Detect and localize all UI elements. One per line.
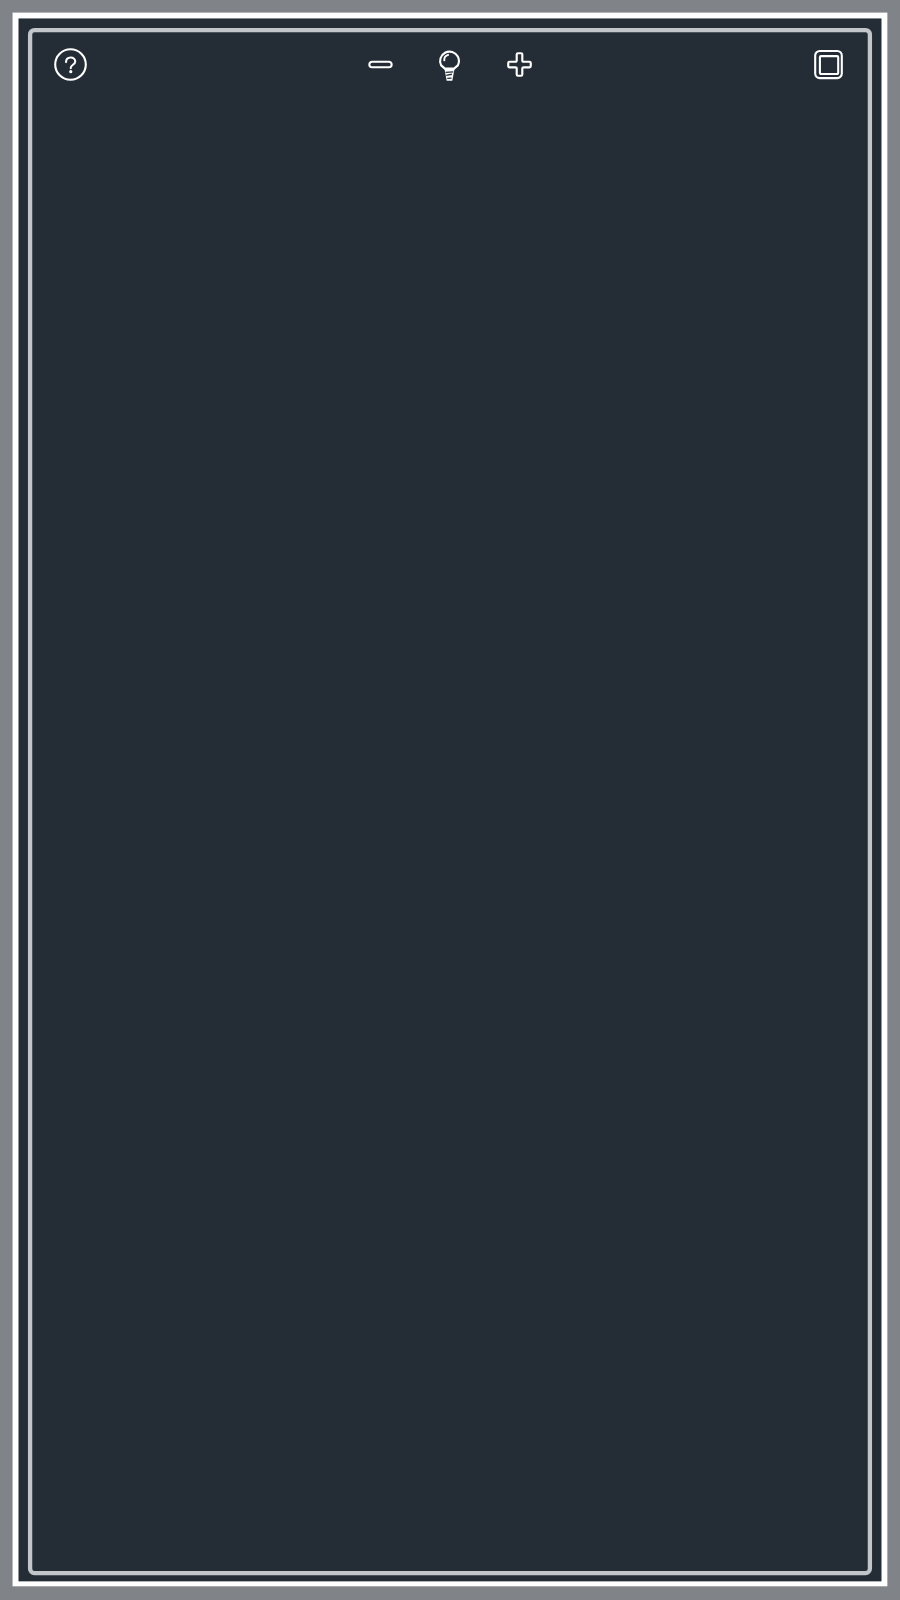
button[interactable]: Stop (805, 41, 852, 88)
button[interactable]: Increase (496, 41, 543, 88)
button[interactable]: Help (47, 41, 94, 88)
button[interactable]: Light (426, 42, 473, 89)
button[interactable]: Decrease (357, 41, 404, 88)
